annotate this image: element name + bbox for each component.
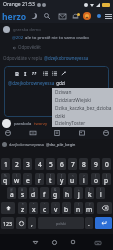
- staticText: ale to prostě nie to samo osobo: [24, 34, 89, 40]
- button[interactable]: Backspace: [97, 202, 112, 214]
- button[interactable]: \: [12, 173, 21, 185]
- button[interactable]: dziki: [52, 112, 113, 120]
- button[interactable]: Back: [30, 237, 40, 247]
- staticText: i: [83, 176, 85, 185]
- button[interactable]: Dark mode: [29, 11, 39, 21]
- staticText: 4: [38, 160, 42, 169]
- button[interactable]: Notifications: [70, 11, 80, 21]
- button[interactable]: :: [51, 202, 60, 214]
- button[interactable]: Media: [101, 128, 111, 138]
- button[interactable]: Attach: [59, 69, 68, 78]
- staticText: 5: [49, 160, 53, 169]
- button[interactable]: 0: [102, 158, 111, 170]
- button[interactable]: @: [7, 187, 16, 199]
- button[interactable]: 1: [1, 158, 10, 170]
- staticText: @dsc_pile_begin: [46, 142, 76, 147]
- button[interactable]: Messages: [57, 11, 67, 21]
- button[interactable]: Search: [42, 11, 52, 21]
- button[interactable]: 3: [23, 158, 32, 170]
- button[interactable]: {: [91, 173, 100, 185]
- button[interactable]: ]: [57, 173, 66, 185]
- button[interactable]: Recents: [68, 237, 78, 247]
- staticText: p: [104, 176, 109, 185]
- staticText: @dzejkobrowneyessa: [8, 80, 55, 86]
- button[interactable]: ": [29, 202, 38, 214]
- button[interactable]: GIF: [28, 128, 38, 138]
- button[interactable]: herzo: [2, 11, 27, 23]
- button[interactable]: dzejkobrowneyessa: [2, 142, 44, 147]
- button[interactable]: ~: [23, 173, 32, 185]
- button[interactable]: ?: [85, 202, 94, 214]
- button[interactable]: ': [40, 202, 49, 214]
- button[interactable]: (: [85, 187, 94, 199]
- staticText: DzielnyToster: [55, 120, 86, 127]
- button[interactable]: Dzika_kaczka_bez_dzioba: [52, 104, 113, 112]
- button[interactable]: Numbered list: [50, 69, 59, 78]
- button[interactable]: Space: [38, 217, 84, 229]
- button[interactable]: Switch keyboard: [93, 238, 103, 248]
- button[interactable]: Menu: [103, 11, 113, 21]
- button[interactable]: !: [74, 202, 83, 214]
- button[interactable]: Bullet list: [41, 69, 50, 78]
- button[interactable]: &: [51, 187, 60, 199]
- staticText: |: [39, 174, 41, 178]
- staticText: 1: [4, 160, 8, 169]
- button[interactable]: |: [35, 173, 44, 185]
- button[interactable]: Profile: [82, 11, 92, 21]
- button[interactable]: *: [18, 202, 27, 214]
- button[interactable]: grzeska demo: [3, 26, 41, 33]
- button[interactable]: 7: [68, 158, 77, 170]
- button[interactable]: 6: [57, 158, 66, 170]
- button[interactable]: DzielnyToster: [52, 120, 113, 127]
- button[interactable]: I: [21, 69, 30, 78]
- button[interactable]: <: [68, 173, 77, 185]
- button[interactable]: Dziwan: [52, 88, 113, 96]
- button[interactable]: 8: [79, 158, 88, 170]
- button[interactable]: +: [74, 187, 83, 199]
- button[interactable]: DzidziarzWiejski: [52, 96, 113, 104]
- button[interactable]: Shift: [1, 202, 15, 214]
- button[interactable]: ;: [62, 202, 71, 214]
- staticText: %: [4, 174, 7, 178]
- button[interactable]: parabola: [2, 119, 48, 128]
- button[interactable]: Home: [49, 237, 59, 247]
- button[interactable]: Emoji: [3, 128, 13, 138]
- staticText: 2: [15, 160, 19, 169]
- button[interactable]: Emoji: [16, 217, 26, 229]
- button[interactable]: 5: [46, 158, 55, 170]
- button[interactable]: Image: [52, 128, 62, 138]
- button[interactable]: Poll: [77, 128, 87, 138]
- button[interactable]: 2: [12, 158, 21, 170]
- button[interactable]: ): [96, 187, 105, 199]
- staticText: @: [10, 188, 13, 192]
- button[interactable]: _: [40, 187, 49, 199]
- button[interactable]: -: [63, 187, 72, 199]
- button[interactable]: }: [102, 173, 111, 185]
- staticText: .: [88, 219, 90, 228]
- staticText: a: [10, 190, 14, 199]
- button[interactable]: .: [85, 217, 93, 229]
- staticText: *: [22, 203, 24, 207]
- button[interactable]: #: [18, 187, 27, 199]
- staticText: -: [67, 188, 69, 192]
- staticText: t: [49, 176, 52, 185]
- button[interactable]: $: [29, 187, 38, 199]
- button[interactable]: B: [12, 69, 21, 78]
- staticText: ,: [31, 219, 33, 228]
- staticText: _: [44, 188, 46, 192]
- button[interactable]: %: [1, 173, 10, 185]
- staticText: g: [53, 190, 58, 199]
- button[interactable]: Odpovědět: [12, 44, 41, 50]
- staticText: gdzi: [55, 80, 66, 86]
- button[interactable]: 4: [35, 158, 44, 170]
- button[interactable]: >: [79, 173, 88, 185]
- button[interactable]: 123: [1, 217, 14, 229]
- button[interactable]: @dsc_pile_begin: [38, 142, 76, 147]
- button[interactable]: [: [46, 173, 55, 185]
- button[interactable]: ,: [28, 217, 36, 229]
- button[interactable]: Quote: [30, 69, 39, 78]
- button[interactable]: Enter: [95, 217, 112, 229]
- staticText: &: [54, 188, 57, 192]
- button[interactable]: 9: [91, 158, 100, 170]
- button[interactable]: Status: [94, 11, 104, 21]
